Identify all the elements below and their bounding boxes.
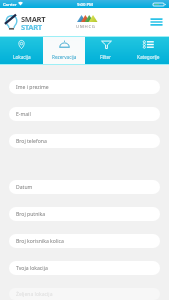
button[interactable]: Datum <box>9 180 160 194</box>
staticText: E-mail <box>16 111 31 118</box>
staticText: 9:00 PM <box>77 1 93 7</box>
button[interactable]: Broj telefona <box>9 134 160 148</box>
staticText: Tvoja lokacija <box>16 265 48 272</box>
button[interactable]: Tvoja lokacija <box>9 261 160 275</box>
button[interactable]: Broj korisnika kolica <box>9 234 160 248</box>
button[interactable]: Broj putnika <box>9 207 160 221</box>
staticText: Broj korisnika kolica <box>16 238 64 245</box>
staticText: Željena lokacija <box>16 291 53 298</box>
staticText: Filter <box>100 54 112 60</box>
staticText: Ime i prezime <box>16 84 49 91</box>
staticText: UMHCG <box>76 23 96 29</box>
button[interactable]: Filter <box>85 37 127 64</box>
staticText: Broj telefona <box>16 138 47 145</box>
staticText: Rezervacija <box>52 54 77 60</box>
staticText: Kategorije <box>137 54 160 60</box>
button[interactable]: Menu <box>148 14 164 30</box>
staticText: Datum <box>16 184 33 191</box>
button[interactable]: Kategorije <box>127 37 169 64</box>
staticText: SMART <box>21 14 46 24</box>
staticText: Carrier <box>3 1 17 7</box>
button[interactable]: Lokacija <box>0 37 43 64</box>
button[interactable]: Ime i prezime <box>9 80 160 94</box>
button[interactable]: E-mail <box>9 107 160 121</box>
button[interactable]: Rezervacija <box>43 37 85 64</box>
staticText: START <box>21 22 42 32</box>
staticText: Lokacija <box>13 54 31 60</box>
staticText: Broj putnika <box>16 211 46 218</box>
